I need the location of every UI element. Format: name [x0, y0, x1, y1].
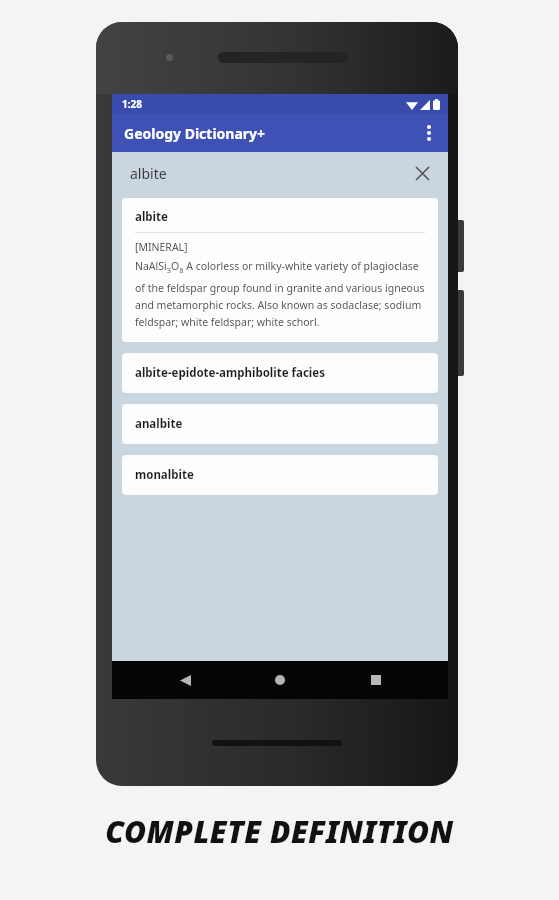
- button[interactable]: monalbite: [122, 455, 438, 495]
- staticText: albite: [135, 209, 168, 225]
- staticText: NaAlSi3O8 A colorless or milky-white var…: [135, 259, 425, 329]
- staticText: albite-epidote-amphibolite facies: [135, 365, 325, 381]
- button[interactable]: More options: [410, 114, 448, 152]
- button[interactable]: Recent apps: [353, 661, 399, 699]
- button[interactable]: Back: [162, 661, 208, 699]
- staticText: [MINERAL]: [135, 240, 188, 254]
- staticText: 1:28: [122, 97, 142, 111]
- staticText: COMPLETE DEFINITION: [105, 811, 454, 852]
- button[interactable]: Home: [257, 661, 303, 699]
- button[interactable]: albite: [112, 152, 448, 194]
- button[interactable]: analbite: [122, 404, 438, 444]
- staticText: monalbite: [135, 467, 194, 483]
- staticText: analbite: [135, 416, 183, 432]
- button[interactable]: Clear search: [410, 161, 434, 185]
- staticText: albite: [130, 164, 167, 183]
- button[interactable]: albite: [122, 198, 438, 342]
- button[interactable]: albite-epidote-amphibolite facies: [122, 353, 438, 393]
- staticText: Geology Dictionary+: [124, 124, 266, 143]
